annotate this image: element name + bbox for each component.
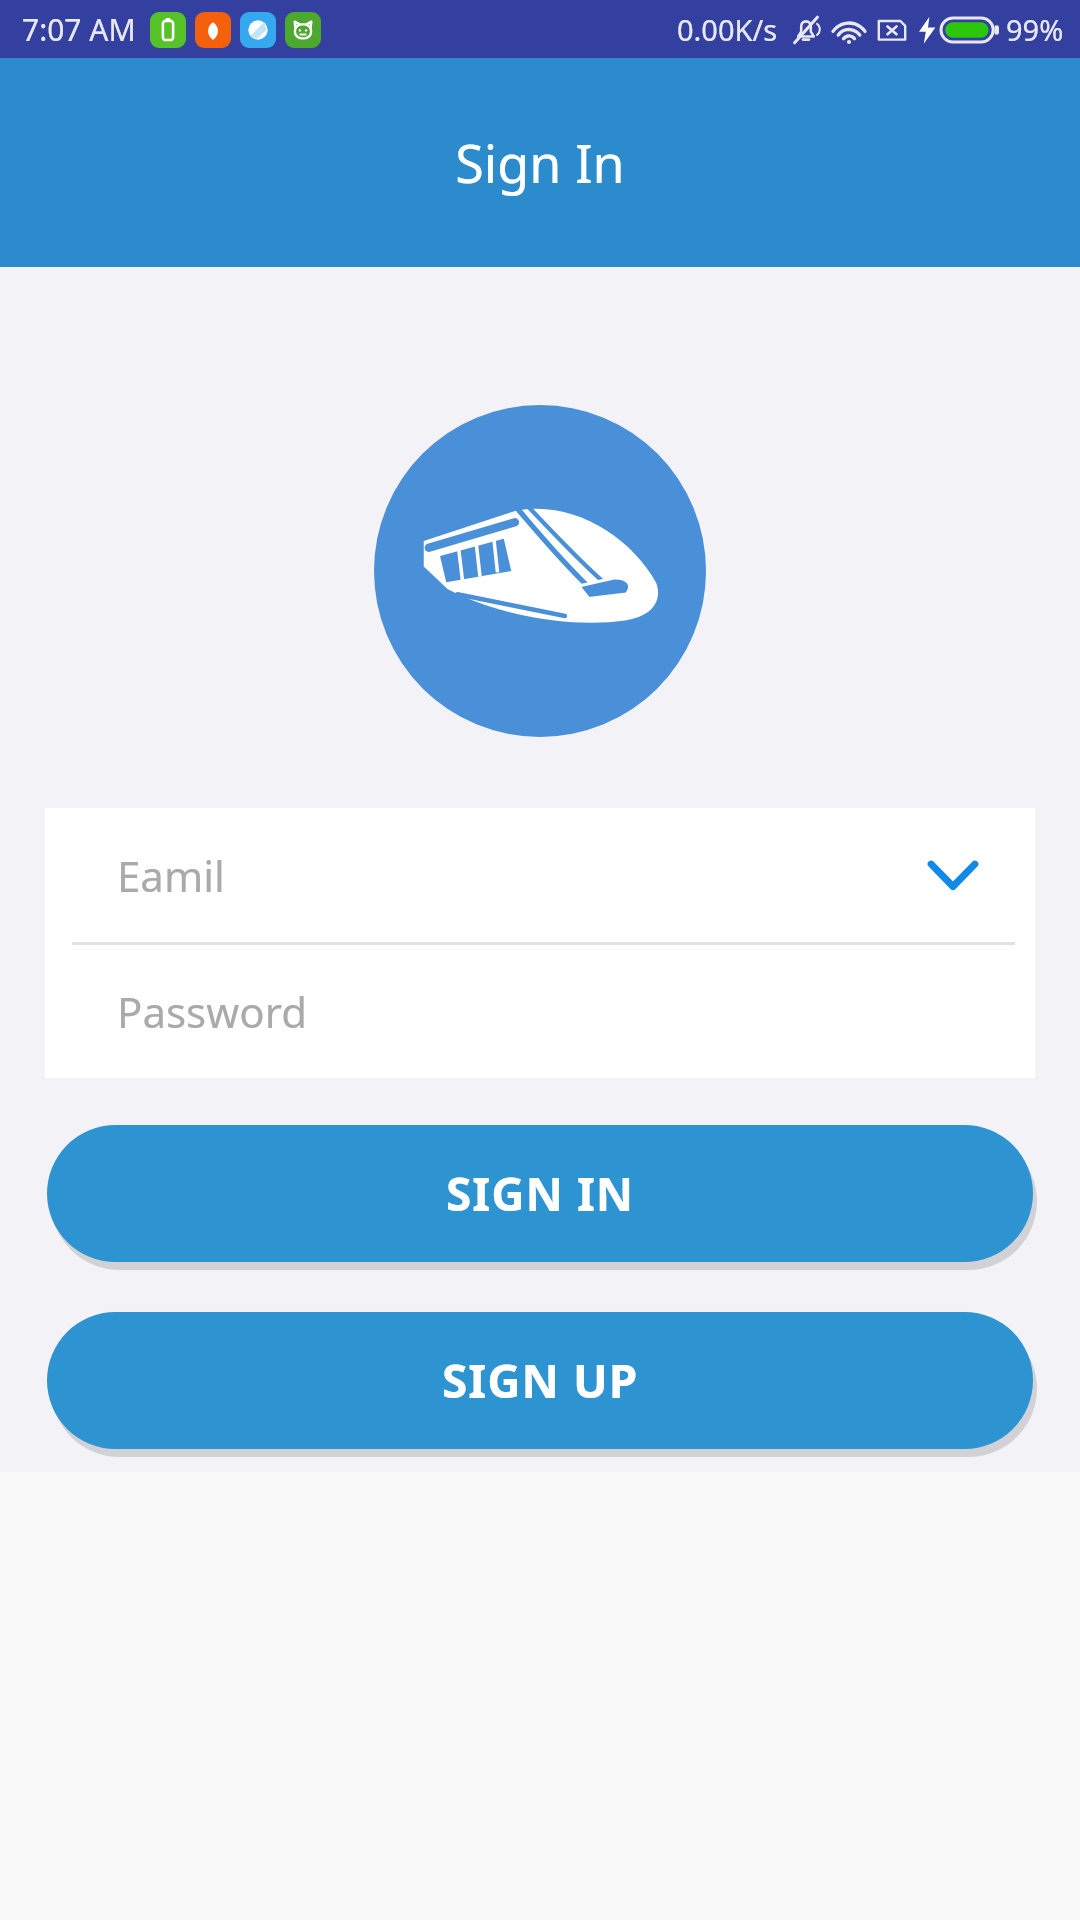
staticText: SIGN UP <box>442 1349 639 1412</box>
button[interactable]: Eamil <box>45 808 1035 942</box>
button[interactable]: SIGN IN <box>47 1125 1033 1262</box>
staticText: Sign In <box>455 127 625 198</box>
staticText: 7:07 AM <box>22 9 136 50</box>
staticText: 0.00K/s <box>677 10 778 49</box>
staticText: 99% <box>1006 10 1064 49</box>
staticText: Password <box>117 983 307 1040</box>
button[interactable]: Password <box>45 945 1035 1078</box>
staticText: SIGN IN <box>446 1162 635 1225</box>
staticText: Eamil <box>117 847 225 904</box>
button[interactable]: SIGN UP <box>47 1312 1033 1449</box>
